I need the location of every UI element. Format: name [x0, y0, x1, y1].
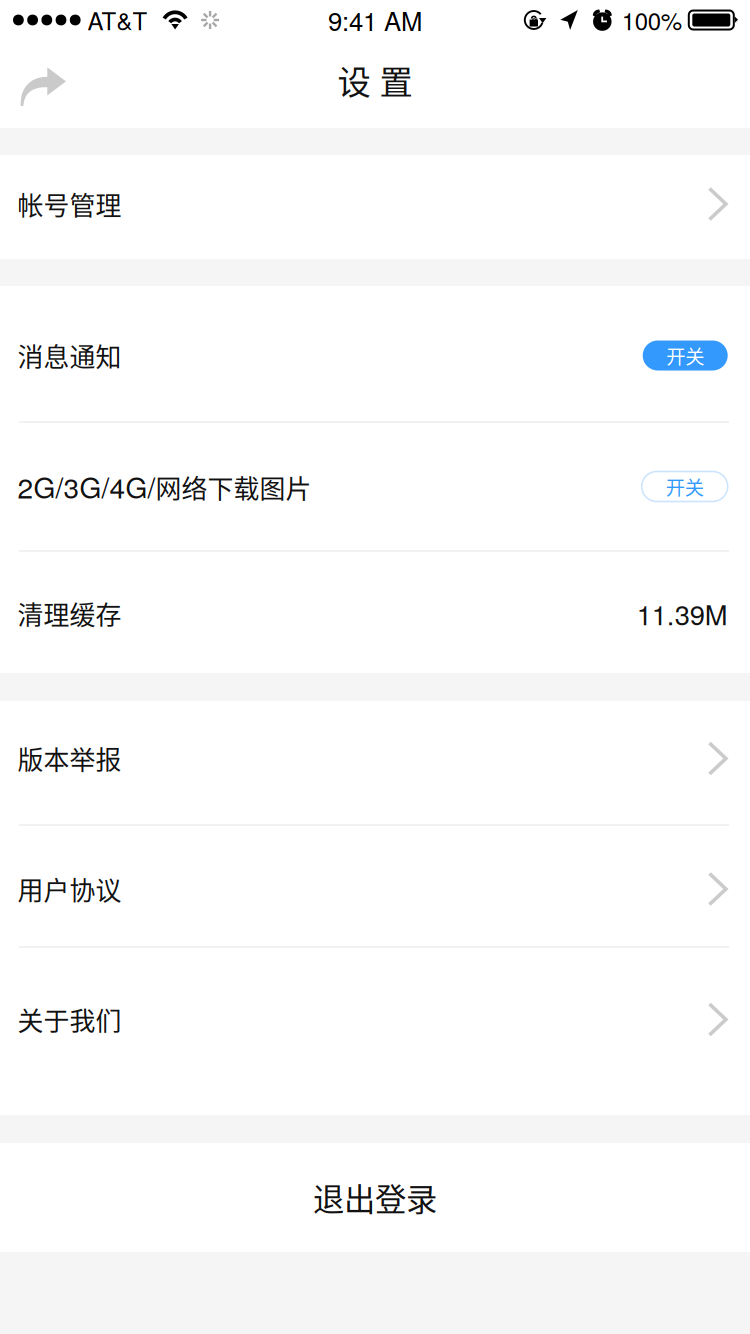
staticText: AT&T [88, 3, 148, 37]
staticText: 关于我们 [18, 1001, 122, 1038]
button[interactable]: 帐号管理 [0, 155, 750, 259]
staticText: 用户协议 [18, 870, 122, 908]
button[interactable]: 版本举报 [0, 701, 750, 824]
staticText: 置 [379, 56, 412, 104]
button[interactable]: 清理缓存 [0, 552, 750, 673]
staticText: 开关 [666, 472, 704, 500]
staticText: 帐号管理 [18, 185, 122, 223]
button[interactable]: 退出登录 [0, 1143, 750, 1252]
button[interactable]: 消息通知 [0, 286, 750, 421]
staticText: 11.39M [637, 594, 728, 633]
button[interactable]: Share [0, 40, 78, 128]
staticText: 100% [622, 3, 682, 37]
staticText: 退出登录 [313, 1175, 437, 1220]
staticText: 消息通知 [18, 337, 122, 374]
staticText: 9:41 AM [328, 2, 422, 38]
staticText: 2G/3G/4G/网络下载图片 [18, 467, 312, 506]
staticText: 版本举报 [18, 740, 122, 777]
button[interactable]: 用户协议 [0, 826, 750, 946]
button[interactable]: 关于我们 [0, 948, 750, 1115]
staticText: 清理缓存 [18, 595, 122, 632]
staticText: 开关 [666, 341, 704, 369]
button[interactable]: 2G/3G/4G/网络下载图片 [0, 423, 750, 550]
staticText: 设 [337, 56, 370, 104]
